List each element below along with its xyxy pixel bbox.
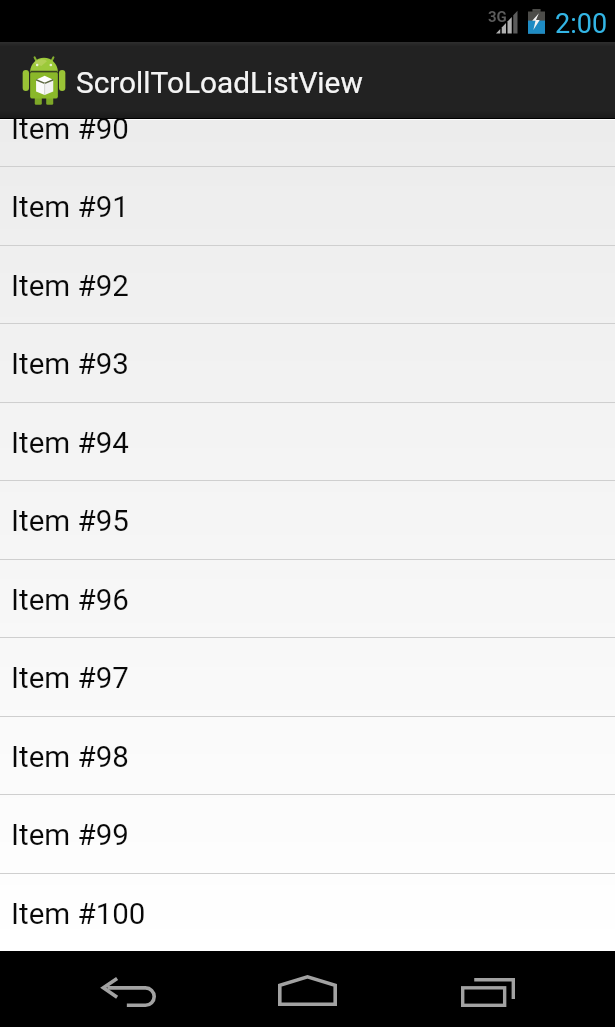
button[interactable]: Item #95 bbox=[0, 480, 615, 559]
staticText: Item #93 bbox=[11, 347, 129, 382]
button[interactable]: Item #94 bbox=[0, 402, 615, 481]
staticText: Item #95 bbox=[11, 504, 129, 539]
button[interactable]: Item #92 bbox=[0, 245, 615, 324]
staticText: Item #91 bbox=[11, 190, 129, 225]
staticText: Item #96 bbox=[11, 583, 129, 618]
button[interactable]: Item #99 bbox=[0, 794, 615, 873]
button[interactable]: Item #96 bbox=[0, 559, 615, 638]
staticText: Item #94 bbox=[11, 426, 129, 461]
staticText: Item #100 bbox=[11, 897, 146, 932]
staticText: Item #99 bbox=[11, 818, 129, 853]
button[interactable]: Home bbox=[247, 951, 367, 1027]
button[interactable]: Item #100 bbox=[0, 873, 615, 952]
button[interactable]: Item #90 bbox=[0, 88, 615, 167]
button[interactable]: Item #97 bbox=[0, 637, 615, 716]
button[interactable]: Item #93 bbox=[0, 323, 615, 402]
staticText: Item #98 bbox=[11, 740, 129, 775]
button[interactable]: Item #91 bbox=[0, 166, 615, 245]
staticText: ScrollToLoadListView bbox=[76, 65, 363, 100]
staticText: 2:00 bbox=[555, 8, 608, 40]
staticText: Item #90 bbox=[11, 112, 129, 147]
staticText: Item #97 bbox=[11, 661, 129, 696]
button[interactable]: Recent apps bbox=[427, 951, 547, 1027]
button[interactable]: Item #98 bbox=[0, 716, 615, 795]
button[interactable]: Back bbox=[68, 951, 188, 1027]
other: App icon bbox=[22, 55, 66, 106]
staticText: 3G bbox=[488, 8, 507, 26]
staticText: Item #92 bbox=[11, 269, 129, 304]
